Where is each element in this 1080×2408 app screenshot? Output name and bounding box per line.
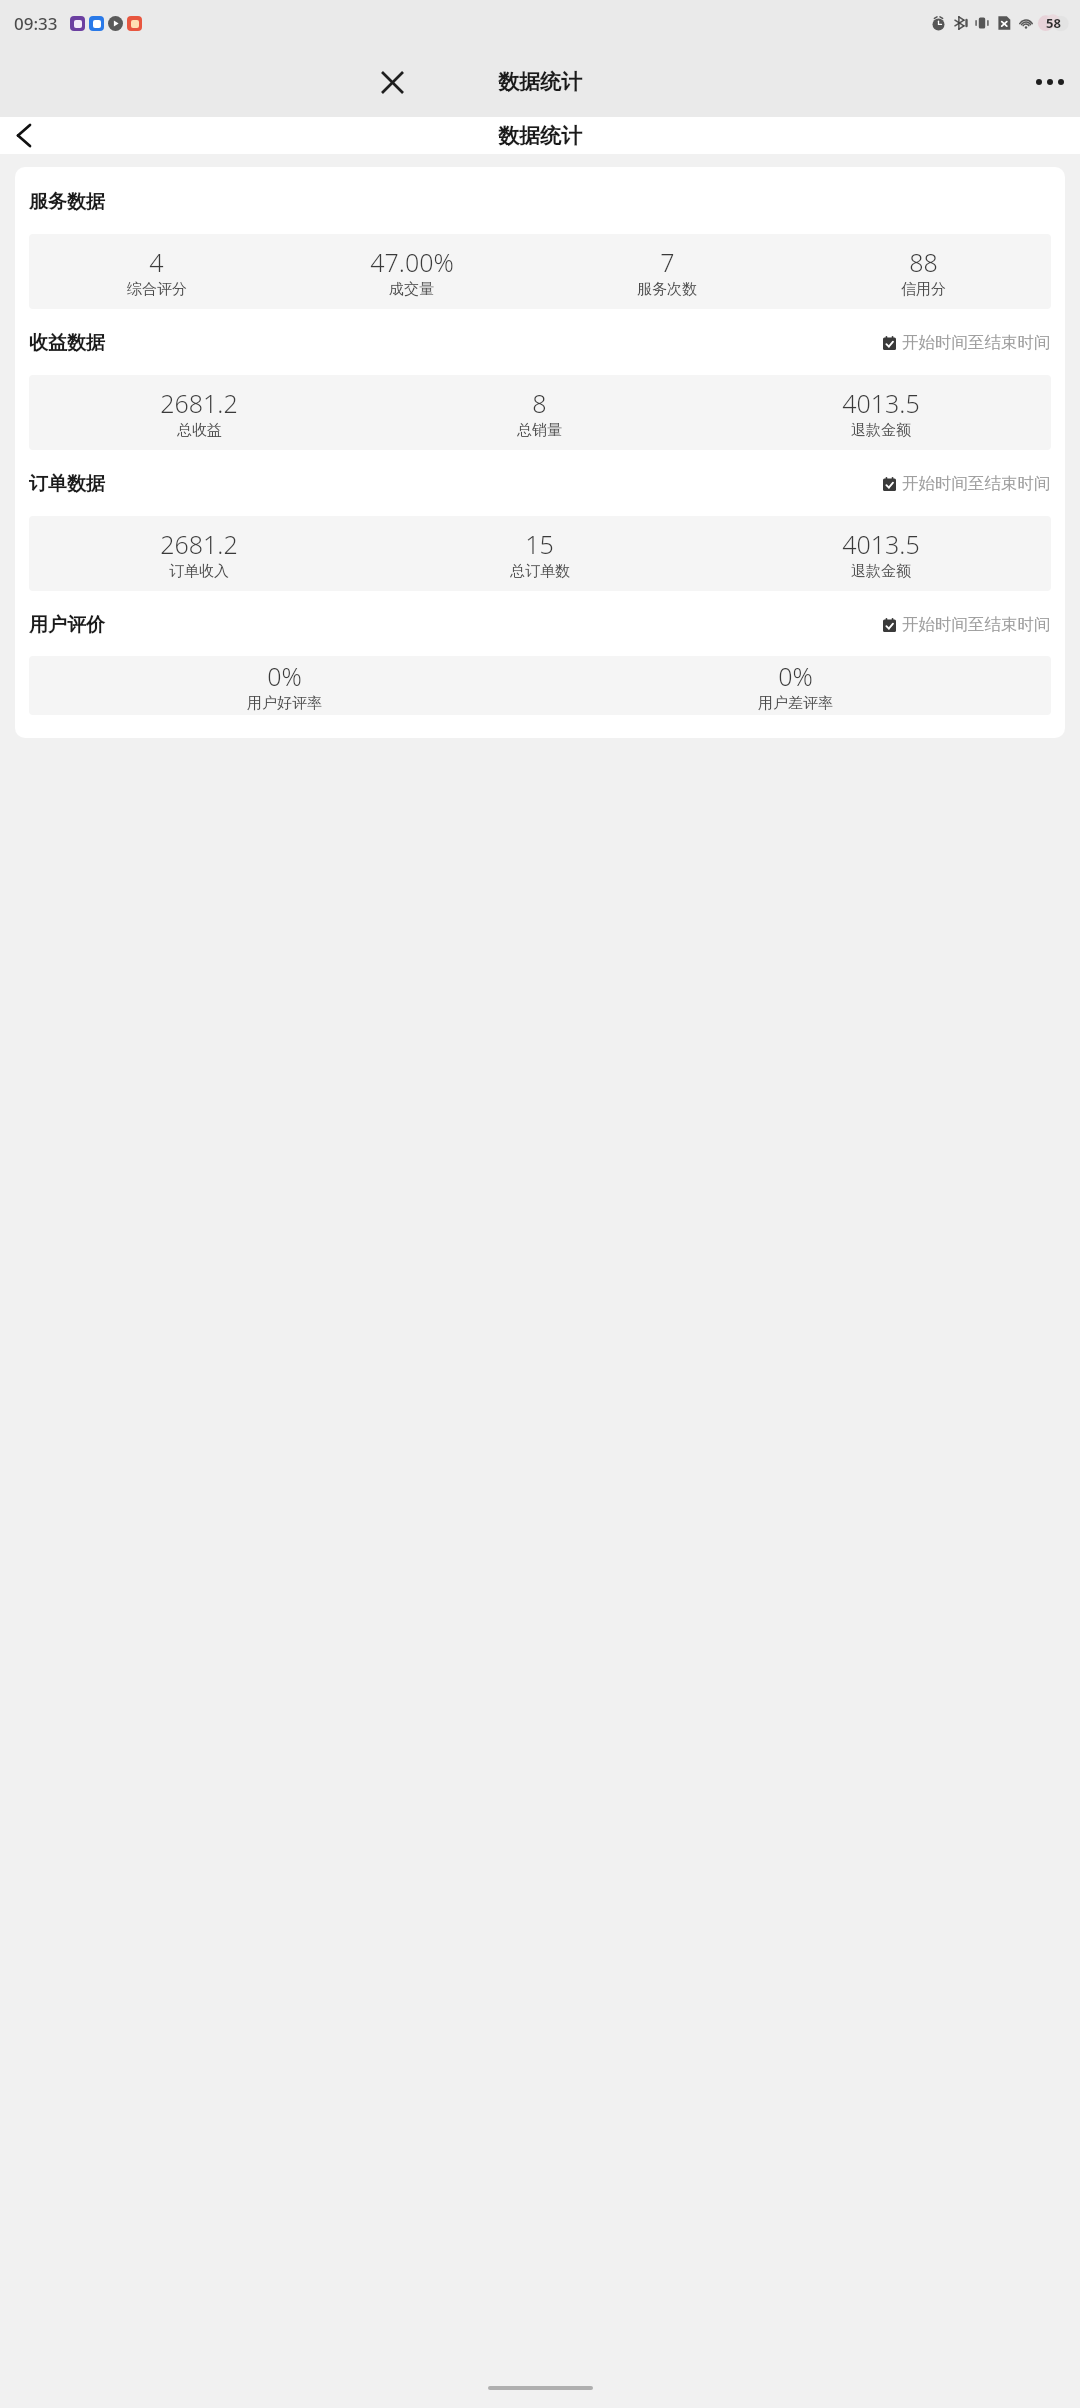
staticText: 服务次数	[637, 280, 697, 299]
button[interactable]: 开始时间至结束时间	[883, 330, 1051, 355]
staticText: 09:33	[14, 12, 58, 35]
button[interactable]: 2681.2	[29, 527, 369, 581]
staticText: 退款金额	[851, 562, 911, 581]
staticText: 15	[525, 527, 554, 561]
button[interactable]: 4013.5	[710, 386, 1051, 440]
staticText: 0%	[267, 659, 302, 693]
staticText: 用户评价	[29, 613, 105, 637]
staticText: 88	[909, 245, 938, 279]
button[interactable]: 0%	[540, 659, 1051, 713]
staticText: 信用分	[901, 280, 946, 299]
staticText: 综合评分	[127, 280, 187, 299]
staticText: 用户好评率	[247, 694, 322, 713]
staticText: 2681.2	[160, 386, 238, 420]
button[interactable]: 47.00%	[284, 245, 539, 299]
button[interactable]: 更多	[1026, 58, 1074, 106]
staticText: 用户差评率	[758, 694, 833, 713]
button[interactable]: 88	[795, 245, 1051, 299]
staticText: 0%	[778, 659, 813, 693]
staticText: 总收益	[177, 421, 222, 440]
button[interactable]: 开始时间至结束时间	[883, 471, 1051, 496]
button[interactable]: 7	[539, 245, 795, 299]
staticText: 总销量	[517, 421, 562, 440]
button[interactable]: 2681.2	[29, 386, 369, 440]
staticText: 开始时间至结束时间	[902, 614, 1051, 635]
button[interactable]: 8	[369, 386, 710, 440]
staticText: 开始时间至结束时间	[902, 332, 1051, 353]
staticText: 数据统计	[498, 69, 582, 95]
staticText: 退款金额	[851, 421, 911, 440]
staticText: 4013.5	[842, 386, 920, 420]
staticText: 成交量	[389, 280, 434, 299]
staticText: 8	[532, 386, 547, 420]
staticText: 服务数据	[29, 190, 105, 214]
button[interactable]: 4	[29, 245, 284, 299]
button[interactable]: 4013.5	[710, 527, 1051, 581]
staticText: 开始时间至结束时间	[902, 473, 1051, 494]
staticText: 58	[1046, 14, 1061, 32]
staticText: 订单数据	[29, 472, 105, 496]
staticText: 4013.5	[842, 527, 920, 561]
staticText: 总订单数	[510, 562, 570, 581]
staticText: 收益数据	[29, 331, 105, 355]
button[interactable]: 15	[369, 527, 710, 581]
button[interactable]: 0%	[29, 659, 540, 713]
button[interactable]: 开始时间至结束时间	[883, 612, 1051, 637]
staticText: 2681.2	[160, 527, 238, 561]
staticText: 47.00%	[370, 245, 454, 279]
staticText: 7	[660, 245, 675, 279]
button[interactable]: 返回	[2, 117, 46, 154]
staticText: 订单收入	[169, 562, 229, 581]
staticText: 数据统计	[498, 123, 582, 149]
button[interactable]: 关闭	[368, 58, 416, 106]
staticText: 4	[149, 245, 164, 279]
